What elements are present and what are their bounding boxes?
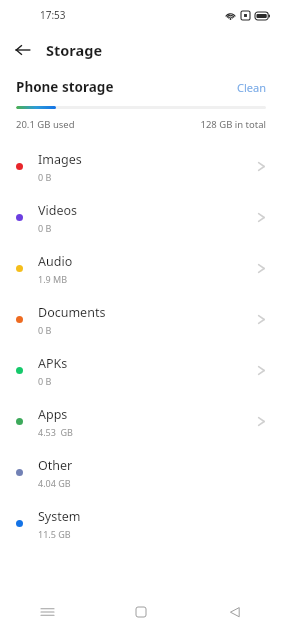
staticText: Videos — [38, 202, 78, 219]
staticText: Apps — [38, 406, 68, 423]
button[interactable]: Recent apps — [0, 594, 94, 630]
staticText: 128 GB in total — [200, 118, 266, 131]
staticText: 11.5 GB — [38, 528, 71, 540]
staticText: 0 B — [38, 375, 52, 387]
button[interactable]: Images — [0, 141, 282, 192]
staticText: Other — [38, 457, 73, 474]
staticText: Documents — [38, 304, 106, 321]
button[interactable]: Other — [0, 447, 282, 498]
button[interactable]: Documents — [0, 294, 282, 345]
button[interactable]: System — [0, 498, 282, 549]
button[interactable]: Apps — [0, 396, 282, 447]
button[interactable]: Clean — [237, 80, 266, 95]
staticText: 4.04 GB — [38, 477, 71, 489]
staticText: 4.53 GB — [38, 426, 73, 438]
button[interactable]: Videos — [0, 192, 282, 243]
staticText: System — [38, 508, 81, 525]
staticText: Audio — [38, 253, 73, 270]
button[interactable]: Back — [8, 35, 38, 65]
staticText: 0 B — [38, 222, 52, 234]
button[interactable]: Home — [94, 594, 188, 630]
staticText: 0 B — [38, 324, 52, 336]
button[interactable]: Audio — [0, 243, 282, 294]
button[interactable]: Back — [188, 594, 282, 630]
staticText: 1.9 MB — [38, 273, 68, 285]
staticText: Storage — [46, 40, 103, 60]
staticText: 17:53 — [40, 8, 66, 22]
button[interactable]: APKs — [0, 345, 282, 396]
staticText: APKs — [38, 355, 68, 372]
staticText: 20.1 GB used — [16, 118, 75, 131]
staticText: Images — [38, 151, 82, 168]
staticText: Clean — [237, 80, 266, 95]
staticText: Phone storage — [16, 78, 114, 96]
staticText: 0 B — [38, 171, 52, 183]
